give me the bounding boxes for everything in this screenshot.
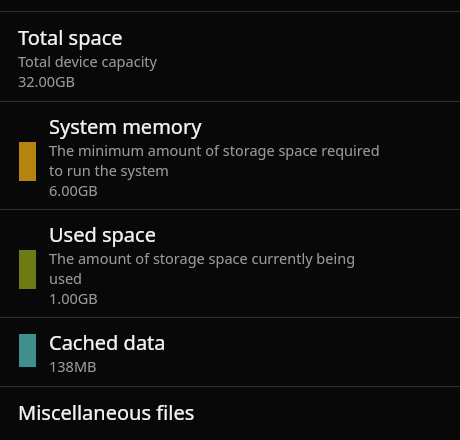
staticText: The minimum amount of storage space requ…	[49, 140, 380, 160]
staticText: Miscellaneous files	[18, 399, 195, 426]
staticText: Total space	[18, 24, 123, 51]
staticText: 1.00GB	[49, 288, 98, 308]
button[interactable]: Miscellaneous files	[0, 387, 460, 438]
button[interactable]: Total space	[0, 12, 460, 101]
staticText: used	[49, 268, 83, 288]
staticText: 138MB	[49, 356, 97, 376]
staticText: 6.00GB	[49, 180, 98, 200]
staticText: The amount of storage space currently be…	[49, 248, 356, 268]
staticText: to run the system	[49, 160, 169, 180]
staticText: Total device capacity	[18, 51, 157, 71]
staticText: Used space	[49, 221, 156, 248]
staticText: Cached data	[49, 329, 166, 356]
button[interactable]: System memory	[0, 102, 460, 209]
button[interactable]: Used space	[0, 210, 460, 317]
staticText: 32.00GB	[18, 71, 76, 91]
staticText: System memory	[49, 113, 202, 140]
button[interactable]: Cached data	[0, 318, 460, 386]
